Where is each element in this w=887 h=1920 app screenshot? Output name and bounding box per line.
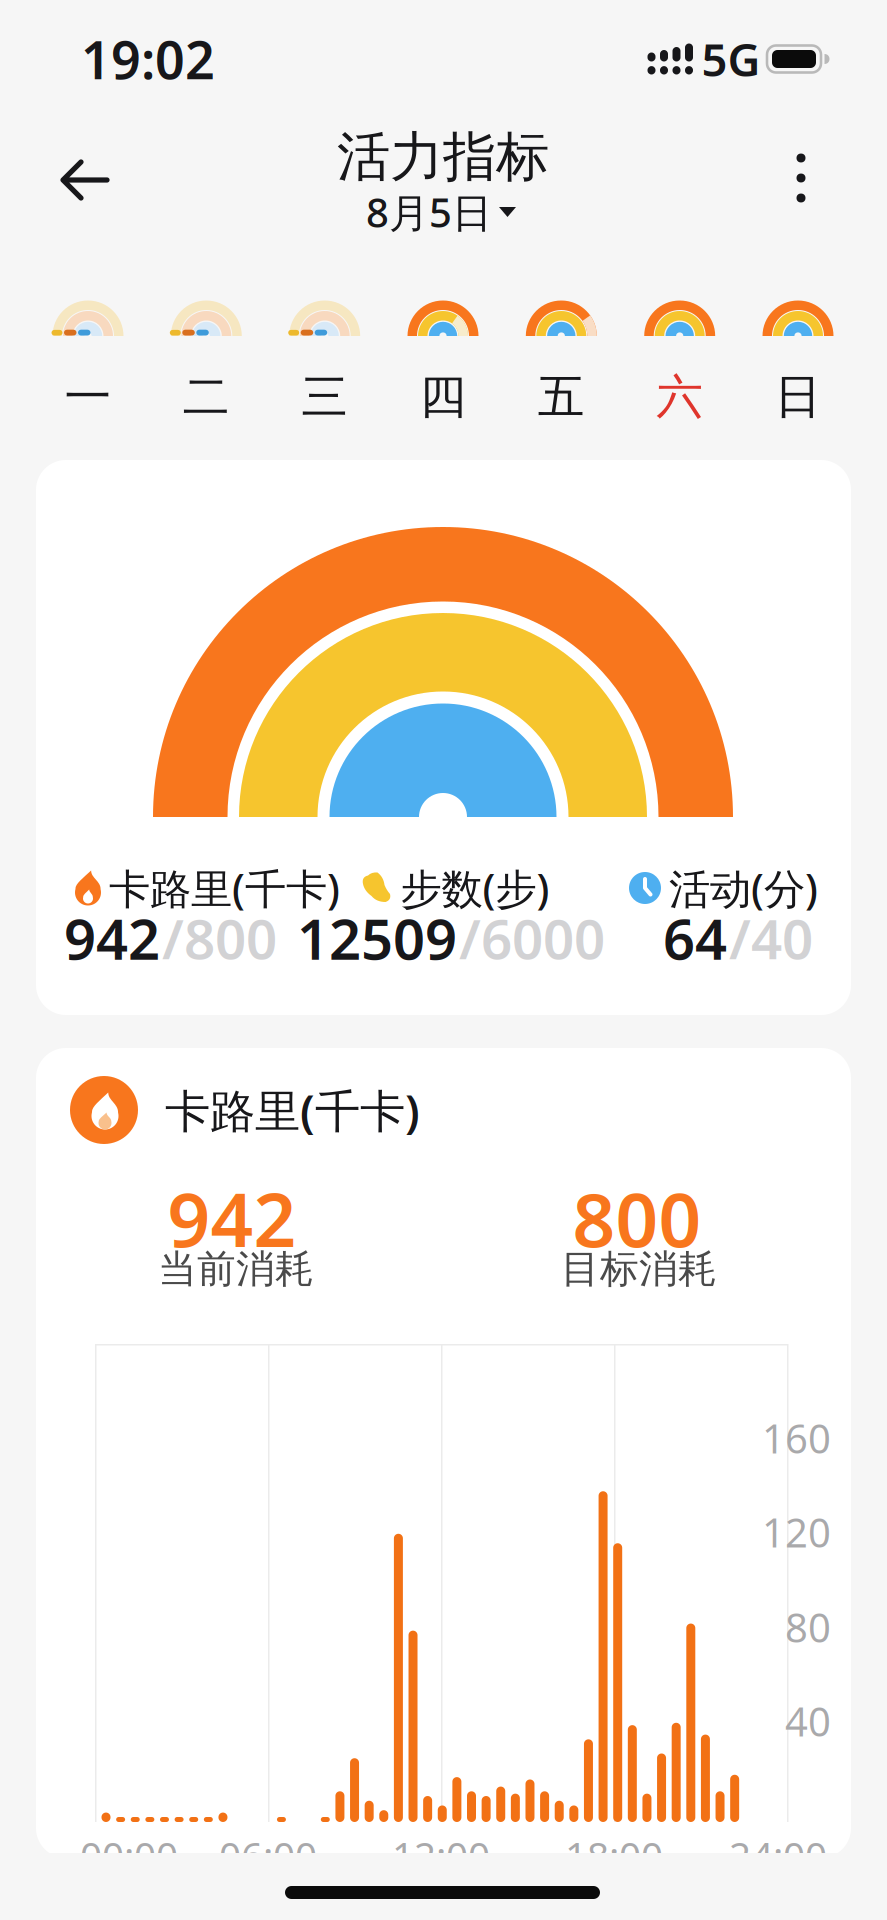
staticText: 5G — [701, 29, 760, 89]
staticText: 12509 — [297, 901, 457, 975]
button[interactable]: 一 — [33, 298, 143, 422]
staticText: /40 — [729, 902, 813, 974]
staticText: 当前消耗 — [158, 1245, 314, 1293]
staticText: /6000 — [459, 902, 605, 974]
staticText: 19:02 — [81, 24, 215, 94]
staticText: 942 — [64, 901, 160, 975]
staticText: 8月5日 — [366, 185, 492, 238]
staticText: 12:00 — [392, 1829, 490, 1881]
staticText: 活动(分) — [669, 861, 818, 915]
staticText: 卡路里(千卡) — [109, 861, 340, 915]
staticText: 三 — [301, 368, 348, 426]
button[interactable]: 五 — [506, 298, 616, 422]
button[interactable] — [55, 150, 115, 210]
button[interactable] — [779, 151, 823, 205]
staticText: 40 — [785, 1694, 831, 1747]
button[interactable]: 三 — [270, 298, 380, 422]
staticText: 活力指标 — [337, 124, 549, 190]
staticText: 四 — [419, 368, 466, 426]
staticText: 五 — [538, 368, 585, 426]
staticText: 日 — [774, 368, 821, 426]
button[interactable]: 二 — [151, 298, 261, 422]
staticText: 24:00 — [729, 1829, 827, 1881]
staticText: 六 — [656, 368, 703, 426]
staticText: 18:00 — [565, 1829, 663, 1881]
staticText: 800 — [572, 1168, 701, 1268]
button[interactable] — [36, 460, 851, 1015]
staticText: 80 — [785, 1600, 831, 1653]
staticText: 步数(步) — [400, 861, 549, 915]
staticText: 64 — [663, 901, 727, 975]
button[interactable]: 8月5日 — [366, 185, 516, 238]
staticText: 目标消耗 — [561, 1245, 717, 1293]
staticText: 卡路里(千卡) — [165, 1080, 420, 1140]
staticText: 120 — [762, 1505, 831, 1558]
staticText: 942 — [167, 1168, 296, 1268]
staticText: /800 — [162, 902, 277, 974]
staticText: 一 — [64, 368, 111, 426]
staticText: 二 — [183, 368, 230, 426]
button[interactable]: 六 — [625, 298, 735, 422]
staticText: 160 — [762, 1411, 831, 1464]
button[interactable]: 日 — [743, 298, 853, 422]
button[interactable]: 四 — [388, 298, 498, 422]
staticText: 06:00 — [219, 1829, 317, 1881]
staticText: 00:00 — [80, 1829, 178, 1881]
